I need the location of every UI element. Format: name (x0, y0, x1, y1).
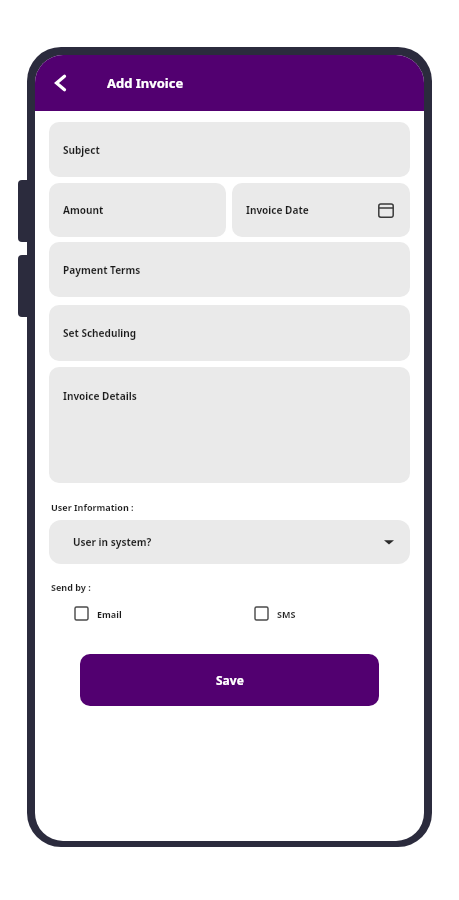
staticText: Add Invoice (107, 74, 184, 92)
staticText: Payment Terms (63, 263, 141, 277)
button[interactable]: Subject (49, 122, 410, 177)
staticText: User Information : (51, 501, 134, 513)
button[interactable]: SMS (229, 605, 410, 622)
staticText: Email (97, 608, 122, 620)
button[interactable]: Email (49, 605, 229, 622)
staticText: Invoice Details (63, 389, 137, 403)
staticText: Save (216, 672, 244, 688)
staticText: Set Scheduling (63, 326, 137, 340)
button[interactable]: Back (43, 65, 79, 101)
button[interactable]: Invoice Date (232, 183, 410, 237)
button[interactable]: Save (80, 654, 379, 706)
staticText: Subject (63, 143, 100, 157)
staticText: Amount (63, 203, 104, 217)
button[interactable]: Payment Terms (49, 242, 410, 297)
button[interactable]: Set Scheduling (49, 305, 410, 361)
staticText: SMS (277, 608, 296, 620)
other: Pick date (376, 200, 396, 220)
staticText: User in system? (73, 535, 152, 549)
button[interactable]: Amount (49, 183, 226, 237)
button[interactable]: User in system? (49, 520, 410, 564)
staticText: Send by : (51, 581, 91, 593)
staticText: Invoice Date (246, 203, 309, 217)
button[interactable]: Invoice Details (49, 367, 410, 483)
